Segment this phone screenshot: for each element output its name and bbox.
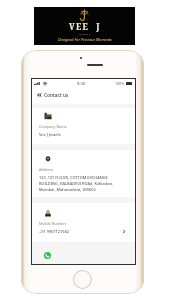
staticText: 9:30 (77, 81, 85, 86)
staticText: Address (39, 167, 53, 172)
staticText: BUILDING, KALBADEVI ROAd, Kolkadevi, (39, 181, 114, 186)
staticText: Contact us (44, 92, 69, 98)
staticText: Mobile Number (39, 221, 67, 226)
staticText: VEE J (69, 21, 101, 32)
staticText: Designed For Precious Moments (58, 37, 112, 42)
staticText: Vee J Jewels (39, 132, 61, 137)
staticText: 123, 1ST FLOOR, COTTOM EXCHANGE (39, 175, 108, 180)
button[interactable]: Back (36, 91, 42, 99)
button[interactable]: Mobile Number (32, 203, 135, 242)
staticText: +91 9967121582 (39, 229, 69, 234)
staticText: Company Name (39, 124, 67, 129)
button[interactable]: WhatsApp (44, 252, 51, 259)
staticText: Mumbai, Maharashtra, 400002 (39, 187, 96, 192)
button[interactable]: Company Name (32, 108, 135, 144)
button[interactable]: Address (32, 150, 135, 197)
staticText: 100% (115, 81, 125, 86)
staticText: JEWELS (79, 32, 91, 35)
